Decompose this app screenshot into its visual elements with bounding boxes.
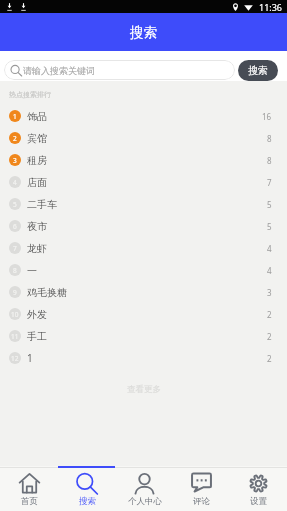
staticText: 1 [27,351,33,365]
staticText: 10 [11,310,19,319]
staticText: 二手车 [27,198,57,211]
staticText: 饰品 [27,110,47,123]
staticText: 搜索 [130,24,157,41]
staticText: 一 [27,264,37,277]
staticText: 8 [13,266,17,275]
staticText: 5 [267,221,272,232]
staticText: 龙虾 [27,242,47,255]
staticText: 外发 [27,308,47,321]
staticText: 6 [13,222,17,231]
button[interactable]: Settings [230,468,287,511]
button[interactable]: Search [58,468,116,511]
staticText: 16 [262,111,272,122]
button[interactable]: 12 [0,347,287,369]
staticText: 5 [13,200,17,209]
button[interactable]: 1 [0,105,287,127]
button[interactable]: 9 [0,281,287,303]
staticText: 11 [11,332,19,341]
staticText: 夜市 [27,220,47,233]
staticText: 2 [267,309,272,320]
staticText: 4 [13,178,17,187]
button[interactable]: 10 [0,303,287,325]
staticText: 首页 [21,496,38,507]
staticText: 手工 [27,330,47,343]
staticText: 2 [267,331,272,342]
staticText: 鸡毛换糖 [27,286,67,299]
button[interactable]: 11 [0,325,287,347]
staticText: 店面 [27,176,47,189]
button[interactable]: Home [0,468,58,511]
button[interactable]: 5 [0,193,287,215]
staticText: 个人中心 [128,496,162,507]
staticText: 4 [267,243,272,254]
staticText: 1 [13,112,17,121]
staticText: 3 [13,156,17,165]
button[interactable]: 搜索 [238,60,278,81]
button[interactable]: 4 [0,171,287,193]
button[interactable]: 6 [0,215,287,237]
staticText: 5 [267,199,272,210]
button[interactable]: 7 [0,237,287,259]
button[interactable]: Comments [173,468,230,511]
button[interactable]: 2 [0,127,287,149]
staticText: 2 [13,134,17,143]
button[interactable]: 8 [0,259,287,281]
staticText: 搜索 [79,496,96,507]
button[interactable]: 3 [0,149,287,171]
staticText: 设置 [250,496,267,507]
staticText: 8 [267,155,272,166]
button[interactable]: Profile [116,468,173,511]
staticText: 宾馆 [27,132,47,145]
staticText: 9 [13,288,17,297]
staticText: 8 [267,133,272,144]
staticText: 搜索 [248,64,268,77]
staticText: 评论 [193,496,210,507]
button[interactable]: 查看更多 [111,380,177,399]
staticText: 4 [267,265,272,276]
staticText: 12 [11,354,19,363]
staticText: 2 [267,353,272,364]
staticText: 租房 [27,154,47,167]
button[interactable]: 请输入搜索关键词 [4,60,235,80]
staticText: 热点搜索排行 [9,90,51,99]
staticText: 11:36 [259,1,283,13]
staticText: 3 [267,287,272,298]
staticText: 7 [267,177,272,188]
staticText: 请输入搜索关键词 [23,65,95,76]
staticText: 7 [13,244,17,253]
